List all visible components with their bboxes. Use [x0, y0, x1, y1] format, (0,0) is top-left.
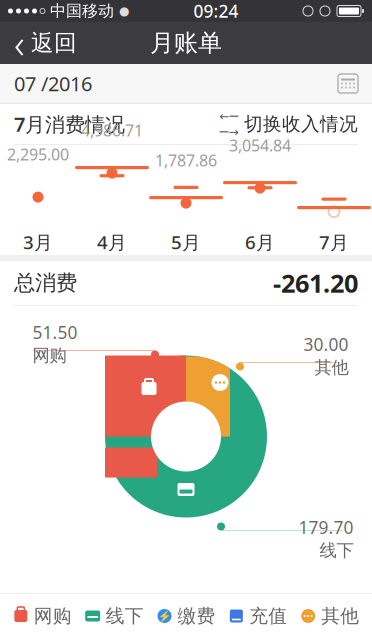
staticText: 179.70	[298, 516, 353, 539]
staticText: 07 /2016	[14, 70, 92, 97]
staticText: 1,787.86	[155, 150, 217, 171]
button[interactable]: ←	[221, 106, 358, 141]
staticText: 3月	[23, 230, 53, 254]
staticText: 中国移动	[50, 1, 114, 21]
staticText: 充值	[249, 604, 287, 627]
button[interactable]: 07 /2016	[0, 64, 372, 103]
staticText: 4,986.71	[81, 120, 143, 141]
staticText: →	[228, 125, 238, 139]
staticText: 51.50	[32, 321, 77, 344]
staticText: 缴费	[177, 604, 215, 627]
staticText: 网购	[32, 345, 66, 366]
staticText: 2,295.00	[7, 144, 69, 165]
staticText: 7月消费情况	[14, 111, 125, 137]
staticText: ←	[219, 109, 229, 123]
staticText: 月账单	[150, 28, 222, 58]
staticText: 其他	[314, 357, 348, 378]
staticText: ‹	[14, 16, 25, 69]
staticText: 切换收入情况	[244, 112, 358, 135]
staticText: 7月	[319, 230, 349, 254]
button[interactable]: 其他	[300, 596, 359, 635]
staticText: 其他	[321, 604, 359, 627]
button[interactable]: ‹	[0, 23, 77, 63]
staticText: ●	[119, 4, 129, 18]
staticText: 09:24	[193, 0, 238, 22]
staticText: 返回	[31, 29, 77, 57]
staticText: ⚡	[158, 610, 171, 622]
button[interactable]: 线下	[85, 596, 144, 635]
staticText: -261.20	[273, 266, 358, 300]
staticText: 总消费	[14, 270, 77, 296]
staticText: 线下	[106, 604, 144, 627]
staticText: 4月	[97, 230, 127, 254]
staticText: 线下	[319, 540, 353, 561]
button[interactable]: 网购	[13, 596, 72, 635]
staticText: 5月	[171, 230, 201, 254]
staticText: 3,054.84	[229, 135, 291, 156]
staticText: 30.00	[303, 333, 348, 356]
button[interactable]: 充值	[228, 596, 287, 635]
staticText: 网购	[34, 604, 72, 627]
staticText: 6月	[245, 230, 275, 254]
button[interactable]: ⚡	[156, 596, 215, 635]
